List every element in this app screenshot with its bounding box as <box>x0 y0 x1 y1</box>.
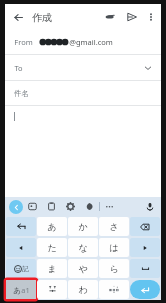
staticText: な <box>78 242 88 253</box>
button[interactable]: AA1 <box>6 280 36 299</box>
button[interactable]: To <box>5 55 161 80</box>
button[interactable]: さ <box>99 217 129 236</box>
button[interactable]: Theme <box>80 197 99 216</box>
button[interactable]: Attach file <box>99 4 121 30</box>
button[interactable]: BACKSPACE <box>130 217 160 236</box>
staticText: は <box>109 242 119 253</box>
button[interactable]: な <box>68 238 98 257</box>
button[interactable]: ARROW_RIGHT <box>130 238 160 257</box>
button[interactable]: Collapse toolbar <box>9 200 23 214</box>
button[interactable]: More options <box>143 4 159 30</box>
staticText: か <box>78 221 88 232</box>
button[interactable]: Settings <box>61 197 80 216</box>
button[interactable]: Voice input <box>141 197 159 216</box>
staticText: あ <box>13 286 21 295</box>
staticText: @gmail.com <box>69 37 113 47</box>
button[interactable]: ら <box>99 259 129 278</box>
staticText: 作成 <box>32 11 52 24</box>
staticText: a1 <box>21 285 30 295</box>
staticText: 記 <box>22 265 29 273</box>
button[interactable]: た <box>37 238 67 257</box>
button[interactable]: EMOJI <box>6 259 36 278</box>
button[interactable]: ENTER <box>130 280 160 299</box>
button[interactable]: あ <box>37 217 67 236</box>
button[interactable]: か <box>68 217 98 236</box>
button[interactable]: Back <box>5 4 31 30</box>
button[interactable]: More <box>100 197 119 216</box>
button[interactable]: ま <box>37 259 67 278</box>
button[interactable]: Stickers <box>23 197 42 216</box>
staticText: ま <box>47 263 57 274</box>
staticText: 件名 <box>14 89 29 98</box>
staticText: た <box>47 242 57 253</box>
button[interactable]: や <box>68 259 98 278</box>
button[interactable]: わ <box>68 280 98 299</box>
button[interactable]: Clipboard <box>42 197 61 216</box>
staticText: さ <box>109 221 119 232</box>
staticText: From <box>14 37 33 47</box>
button[interactable]: PUNCT <box>99 280 129 299</box>
staticText: や <box>78 263 88 274</box>
button[interactable]: Send <box>121 4 143 30</box>
staticText: ら <box>109 263 119 274</box>
button[interactable]: KAOMOJI <box>37 280 67 299</box>
button[interactable]: は <box>99 238 129 257</box>
button[interactable]: ARROW_LEFT <box>6 238 36 257</box>
button[interactable]: UNDO <box>6 217 36 236</box>
staticText: To <box>14 63 23 73</box>
button[interactable]: 件名 <box>5 81 161 105</box>
staticText: あ <box>47 221 57 232</box>
button[interactable]: SPACE <box>130 259 160 278</box>
button[interactable]: From <box>5 30 161 54</box>
staticText: わ <box>78 284 88 295</box>
